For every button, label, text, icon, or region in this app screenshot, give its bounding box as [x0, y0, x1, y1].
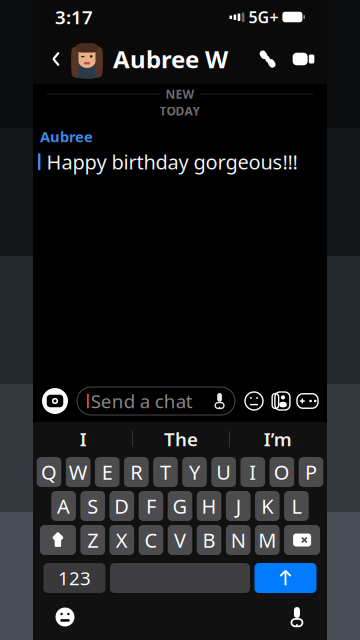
button[interactable]: Camera — [41, 387, 69, 415]
staticText: Z — [87, 527, 98, 553]
staticText: A — [57, 493, 70, 519]
staticText: G — [172, 493, 187, 519]
button[interactable]: T — [153, 457, 178, 487]
button[interactable]: Emoji — [55, 607, 75, 627]
staticText: I — [249, 459, 256, 485]
button[interactable]: The — [133, 422, 229, 456]
button[interactable]: C — [139, 525, 163, 555]
button[interactable]: F — [139, 491, 163, 521]
button[interactable]: Z — [80, 525, 105, 555]
button[interactable]: Q — [37, 457, 61, 487]
staticText: H — [202, 493, 217, 519]
staticText: R — [130, 459, 142, 485]
staticText: NEW — [165, 86, 194, 102]
staticText: Aubree — [40, 127, 93, 146]
staticText: T — [160, 459, 171, 485]
staticText: B — [203, 527, 216, 553]
button[interactable]: Y — [182, 457, 207, 487]
button[interactable]: K — [255, 491, 280, 521]
staticText: J — [236, 493, 241, 519]
staticText: M — [258, 527, 276, 553]
staticText: P — [305, 459, 317, 485]
staticText: I — [80, 427, 87, 451]
button[interactable]: Shift — [40, 525, 76, 555]
button[interactable]: Delete — [284, 525, 320, 555]
button[interactable]: Audio call — [257, 48, 278, 69]
staticText: O — [274, 459, 290, 485]
button[interactable]: Send — [254, 563, 316, 593]
button[interactable]: O — [269, 457, 294, 487]
staticText: L — [291, 493, 301, 519]
staticText: X — [116, 527, 128, 553]
button[interactable]: I — [240, 457, 265, 487]
staticText: S — [87, 493, 98, 519]
staticText: Aubree W — [113, 43, 228, 75]
button[interactable]: G — [168, 491, 192, 521]
button[interactable]: I — [34, 422, 132, 456]
button[interactable]: D — [109, 491, 134, 521]
staticText: 3:17 — [55, 5, 93, 29]
button[interactable]: P — [299, 457, 323, 487]
button[interactable]: Cameos — [269, 391, 291, 411]
button[interactable]: M — [255, 525, 280, 555]
staticText: U — [216, 459, 231, 485]
button[interactable]: J — [226, 491, 250, 521]
button[interactable]: W — [66, 457, 90, 487]
button[interactable]: R — [124, 457, 149, 487]
button[interactable]: Games — [296, 393, 319, 409]
staticText: TODAY — [159, 103, 200, 119]
staticText: I’m — [264, 427, 292, 451]
button[interactable]: Dictation — [289, 607, 305, 627]
staticText: The — [164, 427, 198, 451]
staticText: W — [69, 459, 88, 485]
button[interactable]: Back — [45, 44, 67, 74]
button[interactable]: V — [168, 525, 192, 555]
button[interactable]: N — [226, 525, 250, 555]
staticText: Happy birthday gorgeous!!! — [46, 148, 297, 175]
button[interactable]: U — [211, 457, 236, 487]
button[interactable]: Voice note — [213, 393, 235, 409]
staticText: K — [261, 493, 273, 519]
staticText: Send a chat — [91, 389, 193, 413]
staticText: Y — [189, 459, 200, 485]
button[interactable]: L — [284, 491, 309, 521]
button[interactable]: Video call — [292, 52, 315, 66]
button[interactable]: 123 — [43, 563, 105, 593]
staticText: C — [144, 527, 157, 553]
staticText: N — [231, 527, 246, 553]
button[interactable]: S — [80, 491, 105, 521]
staticText: V — [174, 527, 186, 553]
staticText: D — [114, 493, 129, 519]
button[interactable]: A — [51, 491, 76, 521]
button[interactable]: H — [197, 491, 221, 521]
staticText: E — [102, 459, 113, 485]
staticText: Q — [41, 459, 57, 485]
staticText: F — [146, 493, 156, 519]
button[interactable]: X — [109, 525, 134, 555]
staticText: 123 — [58, 566, 91, 590]
button[interactable]: B — [197, 525, 221, 555]
button[interactable]: Stickers — [244, 391, 264, 411]
button[interactable]: I’m — [230, 422, 326, 456]
button[interactable]: E — [95, 457, 120, 487]
staticText: 5G+ — [248, 6, 278, 28]
